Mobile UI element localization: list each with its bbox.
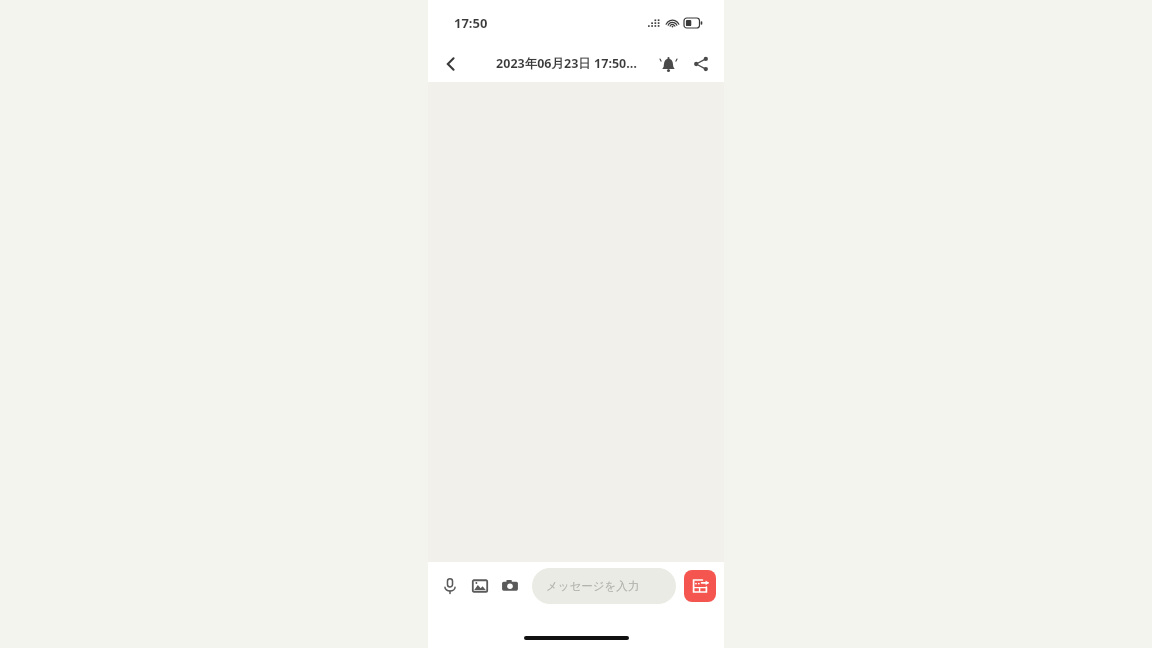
staticText: 2023年06月23日 17:50…	[496, 55, 637, 72]
button[interactable]: Switch input method	[684, 570, 716, 602]
button[interactable]: Photos	[466, 572, 494, 600]
button[interactable]: Camera	[496, 572, 524, 600]
staticText: メッセージを入力	[546, 579, 640, 593]
staticText: 17:50	[454, 14, 488, 32]
button[interactable]: Back	[434, 47, 468, 81]
button[interactable]: メッセージを入力	[532, 568, 676, 604]
button[interactable]: Voice input	[436, 572, 464, 600]
button[interactable]: Share	[686, 49, 716, 79]
button[interactable]: Notifications	[653, 49, 683, 79]
